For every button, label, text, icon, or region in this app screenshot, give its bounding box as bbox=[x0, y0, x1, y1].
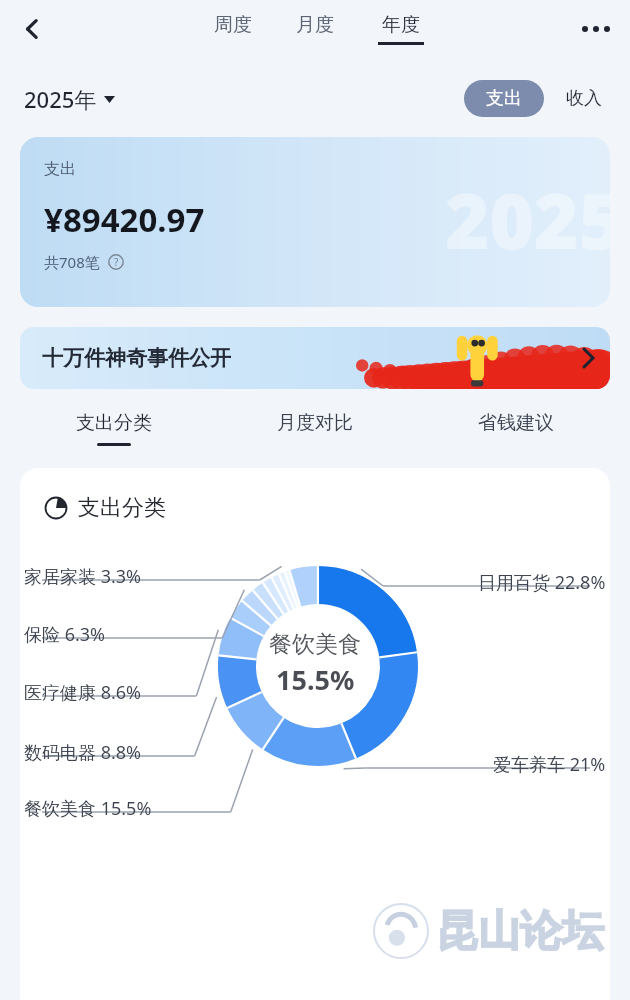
staticText: 2025年 bbox=[24, 84, 97, 114]
staticText: 爱车养车 21% bbox=[493, 752, 606, 777]
staticText: ? bbox=[114, 255, 119, 269]
staticText: 支出 bbox=[486, 87, 522, 110]
staticText: 2025 bbox=[445, 168, 610, 272]
button[interactable]: 支出分类 bbox=[14, 411, 214, 446]
button[interactable]: 支出 bbox=[464, 80, 544, 117]
staticText: 月度 bbox=[296, 13, 334, 37]
button[interactable]: 年度 bbox=[376, 13, 426, 45]
staticText: 共708笔 bbox=[44, 252, 100, 272]
staticText: 家居家装 3.3% bbox=[24, 564, 142, 589]
staticText: 年度 bbox=[382, 13, 420, 37]
button[interactable]: 省钱建议 bbox=[415, 411, 616, 446]
button[interactable]: Back bbox=[8, 5, 56, 53]
staticText: 收入 bbox=[566, 87, 602, 110]
staticText: 保险 6.3% bbox=[24, 622, 106, 647]
staticText: 15.5% bbox=[276, 661, 355, 698]
button[interactable]: Info bbox=[108, 254, 124, 270]
button[interactable]: 2025年 bbox=[24, 84, 115, 114]
staticText: 数码电器 8.8% bbox=[24, 740, 142, 765]
staticText: 昆山论坛 bbox=[436, 905, 604, 958]
button[interactable]: More options bbox=[572, 5, 620, 53]
staticText: 月度对比 bbox=[277, 411, 353, 435]
staticText: ¥89420.97 bbox=[44, 197, 205, 242]
staticText: 周度 bbox=[214, 13, 252, 37]
button[interactable]: 月度对比 bbox=[214, 411, 415, 446]
button[interactable]: 月度 bbox=[294, 13, 336, 45]
staticText: 支出分类 bbox=[76, 411, 152, 435]
staticText: 日用百货 22.8% bbox=[478, 570, 606, 595]
staticText: 餐饮美食 15.5% bbox=[24, 796, 152, 821]
staticText: 十万件神奇事件公开 bbox=[42, 345, 231, 371]
staticText: 省钱建议 bbox=[478, 411, 554, 435]
staticText: 支出 bbox=[44, 159, 76, 179]
button[interactable]: 收入 bbox=[562, 80, 606, 117]
staticText: 医疗健康 8.6% bbox=[24, 680, 142, 705]
staticText: 餐饮美食 bbox=[269, 630, 361, 659]
button[interactable]: 2025 bbox=[20, 137, 610, 307]
button[interactable]: 周度 bbox=[212, 13, 254, 45]
staticText: 支出分类 bbox=[78, 494, 166, 522]
button[interactable]: 十万件神奇事件公开 bbox=[20, 327, 610, 389]
